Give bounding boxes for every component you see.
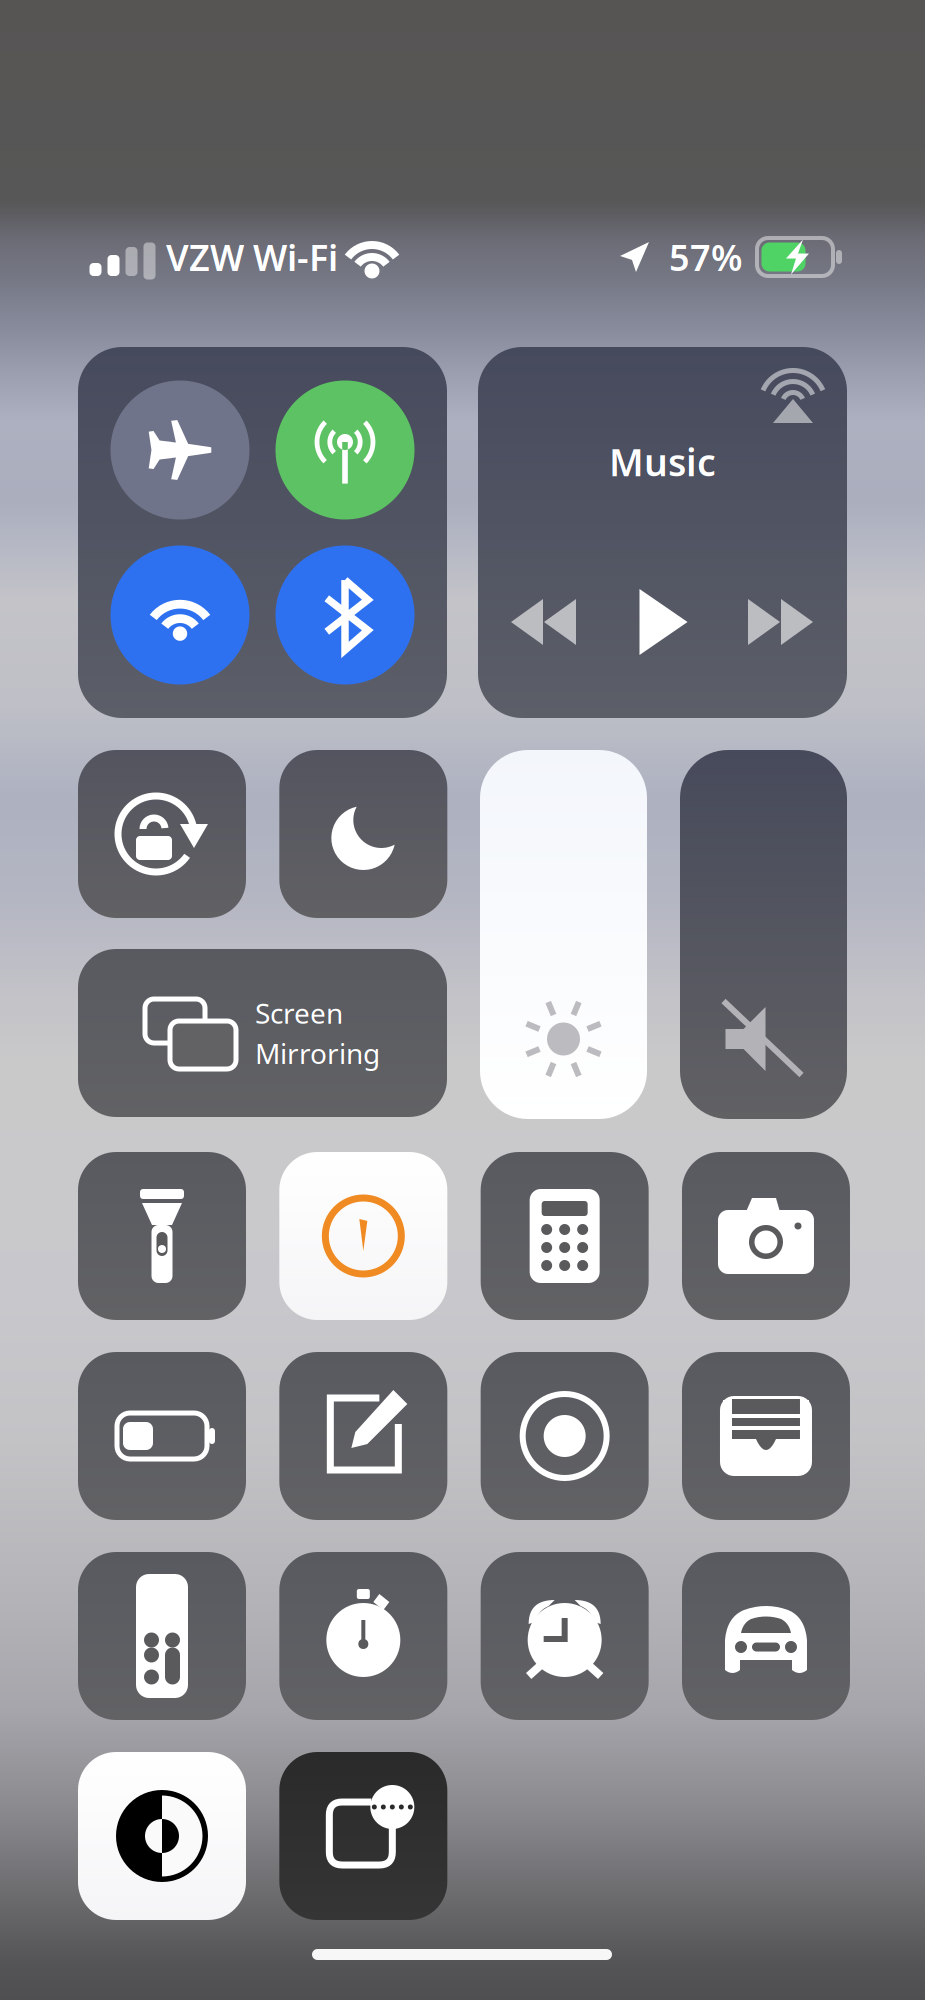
button[interactable]: Timer [279,1152,447,1320]
button[interactable]: Car Mode [682,1552,850,1720]
button[interactable]: Airplane Mode [110,380,249,519]
button[interactable]: Rotation Lock [78,750,246,918]
button[interactable]: Calculator [481,1152,649,1320]
button[interactable]: Bluetooth [275,545,414,684]
button[interactable]: AirPlay [755,359,831,435]
button[interactable]: Dark Mode [78,1752,246,1920]
button[interactable]: Screen [78,949,447,1117]
button[interactable]: Apple TV Remote [78,1552,246,1720]
button[interactable]: Notes [279,1352,447,1520]
button[interactable]: Volume [680,750,847,1119]
button[interactable]: Screen Recording [481,1352,649,1520]
button[interactable]: Previous [494,584,594,660]
staticText: 57% [651,233,752,281]
button[interactable]: Low Power Mode [78,1352,246,1520]
button[interactable]: Play [612,584,712,660]
button[interactable]: Do Not Disturb [279,750,447,918]
button[interactable]: Alarm [481,1552,649,1720]
staticText: Mirroring [255,1034,380,1072]
button[interactable]: Flashlight [78,1152,246,1320]
button[interactable]: Wi-Fi [110,545,249,684]
button[interactable]: Brightness [480,750,647,1119]
button[interactable]: Next [731,584,831,660]
staticText: Music [609,437,716,487]
button[interactable]: Wallet [682,1352,850,1520]
button[interactable]: Camera [682,1152,850,1320]
button[interactable]: Stopwatch [279,1552,447,1720]
button[interactable]: Guided Access [279,1752,447,1920]
staticText: Screen [255,994,343,1031]
staticText: VZW Wi-Fi [157,233,347,281]
button[interactable]: Cellular Data [275,380,414,519]
